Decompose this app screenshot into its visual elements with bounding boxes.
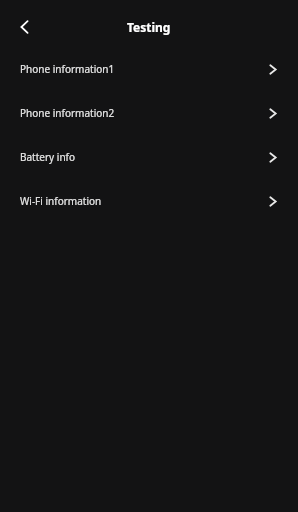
staticText: Battery info bbox=[20, 150, 76, 164]
staticText: Phone information1 bbox=[20, 62, 115, 76]
button[interactable] bbox=[10, 13, 38, 41]
staticText: Phone information2 bbox=[20, 106, 115, 120]
staticText: Wi-Fi information bbox=[20, 194, 102, 208]
button[interactable]: Phone information1 bbox=[0, 47, 298, 91]
button[interactable]: Phone information2 bbox=[0, 91, 298, 135]
button[interactable]: Wi-Fi information bbox=[0, 179, 298, 223]
staticText: Testing bbox=[127, 19, 171, 35]
button[interactable]: Battery info bbox=[0, 135, 298, 179]
